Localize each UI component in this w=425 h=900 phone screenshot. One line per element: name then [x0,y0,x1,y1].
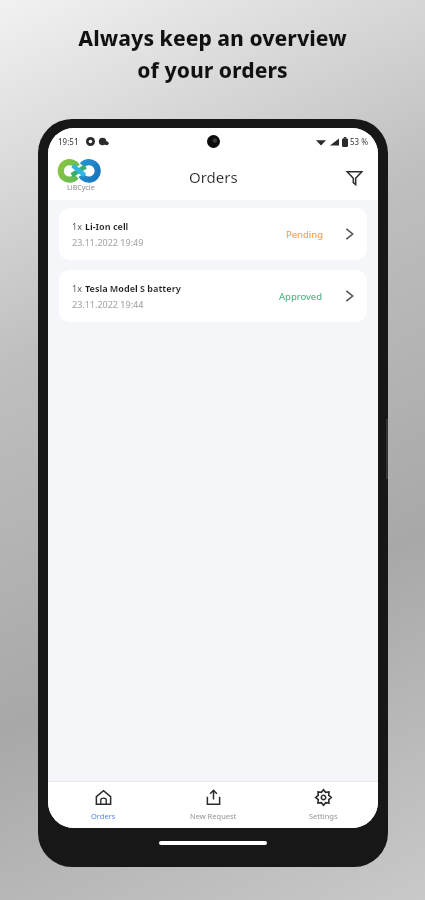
staticText: 19:51 [58,136,79,147]
staticText: Orders [189,167,238,187]
staticText: New Request [190,811,237,821]
staticText: 1x [72,220,85,232]
staticText: Li-Ion cell [85,220,129,232]
staticText: of your orders [137,56,288,85]
staticText: Always keep an overview [78,24,347,53]
button[interactable]: Orders [48,782,158,828]
staticText: 1x [72,282,85,294]
button[interactable]: Filter [338,161,370,193]
staticText: 53 % [350,136,369,147]
button[interactable]: Settings [268,782,378,828]
button[interactable]: New Request [158,782,268,828]
staticText: Tesla Model S battery [85,282,181,294]
staticText: 23.11.2022 19:44 [72,298,144,310]
button[interactable]: 1x [59,270,367,322]
staticText: 23.11.2022 19:49 [72,236,144,248]
staticText: LiBCycle [67,183,95,193]
staticText: Approved [279,290,323,303]
staticText: Orders [91,811,116,821]
staticText: Settings [309,811,338,821]
staticText: Pending [286,228,323,241]
button[interactable]: 1x [59,208,367,260]
